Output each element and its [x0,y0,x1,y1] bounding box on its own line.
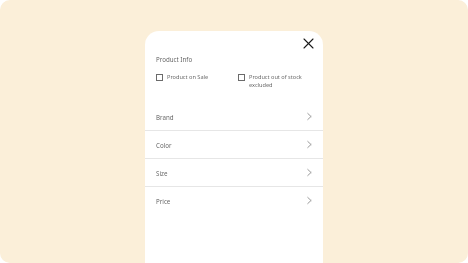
button[interactable]: Color [145,131,323,158]
button[interactable]: Brand [145,103,323,130]
staticText: Product Info [156,55,193,63]
staticText: Brand [156,113,174,121]
staticText: Price [156,197,171,205]
button[interactable]: Product out of stock excluded [238,73,315,89]
button[interactable]: Size [145,159,323,186]
staticText: Color [156,141,172,149]
staticText: Size [156,169,168,177]
button[interactable]: Price [145,187,323,214]
staticText: Product out of stock excluded [249,73,315,89]
staticText: Product on Sale [167,73,209,81]
button[interactable]: Close [300,35,316,51]
button[interactable]: Product on Sale [156,73,234,81]
